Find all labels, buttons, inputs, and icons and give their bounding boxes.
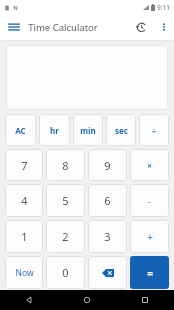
staticText: =: [147, 266, 153, 280]
button[interactable]: =: [130, 256, 169, 289]
button[interactable]: 8: [46, 149, 85, 181]
button[interactable]: Back: [0, 290, 58, 310]
staticText: sec: [115, 125, 128, 136]
staticText: 9: [104, 158, 111, 173]
staticText: 0: [62, 265, 69, 280]
staticText: 7: [21, 158, 28, 173]
staticText: 3: [104, 229, 111, 244]
button[interactable]: -: [130, 184, 169, 217]
button[interactable]: 4: [5, 184, 43, 217]
button[interactable]: 3: [88, 220, 127, 253]
button[interactable]: [6, 45, 168, 110]
staticText: 4: [21, 193, 28, 208]
button[interactable]: Backspace: [88, 256, 127, 289]
button[interactable]: min: [73, 114, 103, 146]
staticText: ×: [147, 160, 152, 171]
staticText: -: [148, 195, 151, 207]
button[interactable]: sec: [106, 114, 136, 146]
staticText: 8: [62, 158, 69, 173]
staticText: hr: [50, 125, 59, 136]
button[interactable]: +: [130, 220, 169, 253]
staticText: 9:11: [157, 3, 170, 12]
button[interactable]: 7: [5, 149, 43, 181]
button[interactable]: Open navigation menu: [0, 14, 28, 40]
staticText: 2: [62, 229, 69, 244]
staticText: Time Calculator: [28, 21, 98, 34]
staticText: ÷: [151, 124, 157, 136]
button[interactable]: History: [128, 14, 154, 40]
button[interactable]: 6: [88, 184, 127, 217]
staticText: +: [147, 230, 153, 244]
button[interactable]: 1: [5, 220, 43, 253]
button[interactable]: ×: [130, 149, 169, 181]
button[interactable]: 9: [88, 149, 127, 181]
staticText: AC: [15, 125, 26, 136]
staticText: min: [80, 125, 96, 136]
button[interactable]: 2: [46, 220, 85, 253]
button[interactable]: 0: [46, 256, 85, 289]
button[interactable]: Recent apps: [116, 290, 174, 310]
staticText: Now: [15, 267, 34, 279]
staticText: 5: [62, 193, 69, 208]
button[interactable]: Home: [58, 290, 116, 310]
button[interactable]: AC: [5, 114, 36, 146]
staticText: N: [13, 4, 18, 11]
button[interactable]: hr: [39, 114, 70, 146]
staticText: 6: [104, 193, 111, 208]
button[interactable]: 5: [46, 184, 85, 217]
button[interactable]: ÷: [139, 114, 169, 146]
staticText: 1: [21, 229, 28, 244]
button[interactable]: Now: [5, 256, 43, 289]
button[interactable]: More options: [154, 14, 174, 40]
